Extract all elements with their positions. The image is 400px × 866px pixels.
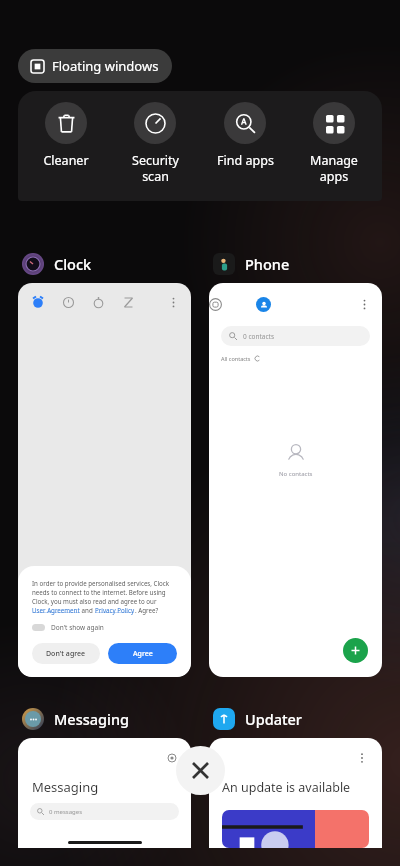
staticText: Manage apps <box>310 152 358 184</box>
button[interactable]: Security scan <box>113 102 197 184</box>
staticText: Agree <box>133 649 153 659</box>
button[interactable]: Find apps <box>203 102 287 169</box>
button[interactable]: 0 contacts <box>221 326 370 346</box>
staticText: . Agree? <box>135 606 159 614</box>
button[interactable]: Close <box>176 746 225 795</box>
button[interactable]: In order to provide personalised service… <box>18 283 191 677</box>
button[interactable]: Don't agree <box>32 643 100 664</box>
staticText: Messaging <box>54 709 130 729</box>
button[interactable]: Floating windows <box>18 49 172 83</box>
staticText: Privacy Policy <box>95 606 135 614</box>
staticText: Don't agree <box>46 649 86 659</box>
button[interactable]: 0 messages <box>30 803 179 820</box>
staticText: Clock <box>54 254 92 274</box>
button[interactable]: Cleaner <box>24 102 108 169</box>
staticText: Cleaner <box>43 152 89 169</box>
staticText: Don't show again <box>51 623 104 632</box>
staticText: Floating windows <box>52 57 159 75</box>
button[interactable]: An update is available <box>209 738 382 848</box>
staticText: In order to provide personalised service… <box>32 579 177 606</box>
button[interactable]: Updater <box>213 708 302 730</box>
staticText: Phone <box>245 254 290 274</box>
staticText: Find apps <box>217 152 274 169</box>
staticText: 0 contacts <box>243 332 275 341</box>
button[interactable]: Add contact <box>343 638 368 663</box>
staticText: An update is available <box>222 779 351 796</box>
button[interactable]: Messaging <box>18 738 191 848</box>
staticText: Messaging <box>32 778 99 796</box>
button[interactable]: Messaging <box>22 708 130 730</box>
staticText: User Agreement <box>32 606 80 614</box>
button[interactable]: Agree <box>108 643 177 664</box>
button[interactable]: 0 contacts <box>209 283 382 677</box>
button[interactable]: Don't show again <box>32 623 104 632</box>
staticText: No contacts <box>279 470 313 478</box>
staticText: All contacts <box>221 355 251 362</box>
staticText: and <box>80 606 95 614</box>
staticText: Updater <box>245 709 302 729</box>
staticText: Security scan <box>132 152 179 184</box>
button[interactable]: Phone <box>213 253 290 275</box>
staticText: 0 messages <box>49 808 83 816</box>
button[interactable]: Manage apps <box>292 102 376 184</box>
button[interactable]: Clock <box>22 253 92 275</box>
